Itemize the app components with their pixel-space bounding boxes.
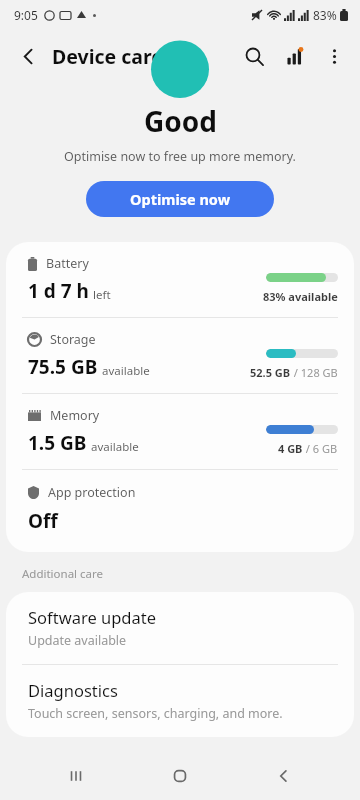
- staticText: 83% available: [263, 289, 338, 304]
- button[interactable]: Battery: [6, 242, 354, 317]
- button[interactable]: Usage chart: [274, 36, 314, 76]
- staticText: Touch screen, sensors, charging, and mor…: [28, 705, 283, 722]
- button[interactable]: Optimise now: [86, 181, 274, 217]
- button[interactable]: More options: [314, 36, 354, 76]
- staticText: 9:05: [14, 7, 38, 23]
- staticText: Off: [28, 508, 58, 534]
- staticText: available: [102, 363, 150, 379]
- button[interactable]: Software update: [6, 592, 354, 664]
- staticText: 75.5 GB: [28, 354, 98, 380]
- button[interactable]: Back: [256, 752, 312, 800]
- staticText: 4 GB: [278, 441, 303, 456]
- button[interactable]: Home: [152, 752, 208, 800]
- staticText: Storage: [50, 331, 96, 348]
- staticText: Additional care: [22, 566, 104, 582]
- button[interactable]: Back: [8, 36, 48, 76]
- staticText: 52.5 GB: [250, 365, 291, 380]
- button[interactable]: Memory: [6, 394, 354, 469]
- staticText: left: [93, 287, 111, 303]
- button[interactable]: Storage: [6, 318, 354, 393]
- staticText: Device care: [52, 43, 163, 70]
- staticText: 1.5 GB: [28, 430, 87, 456]
- button[interactable]: App protection: [6, 470, 354, 552]
- staticText: Software update: [28, 606, 156, 628]
- staticText: / 6 GB: [303, 441, 338, 456]
- staticText: App protection: [48, 484, 136, 501]
- button[interactable]: Search: [234, 36, 274, 76]
- staticText: Memory: [50, 407, 100, 424]
- staticText: Good: [144, 102, 217, 140]
- staticText: Update available: [28, 632, 127, 649]
- button[interactable]: Diagnostics: [6, 665, 354, 737]
- staticText: 1 d 7 h: [28, 278, 89, 304]
- staticText: Optimise now to free up more memory.: [64, 148, 296, 165]
- staticText: Battery: [46, 255, 89, 272]
- staticText: / 128 GB: [291, 365, 338, 380]
- staticText: available: [91, 439, 139, 455]
- staticText: 83%: [313, 7, 337, 23]
- button[interactable]: Recent apps: [48, 752, 104, 800]
- staticText: Optimise now: [130, 189, 231, 209]
- staticText: Diagnostics: [28, 679, 118, 701]
